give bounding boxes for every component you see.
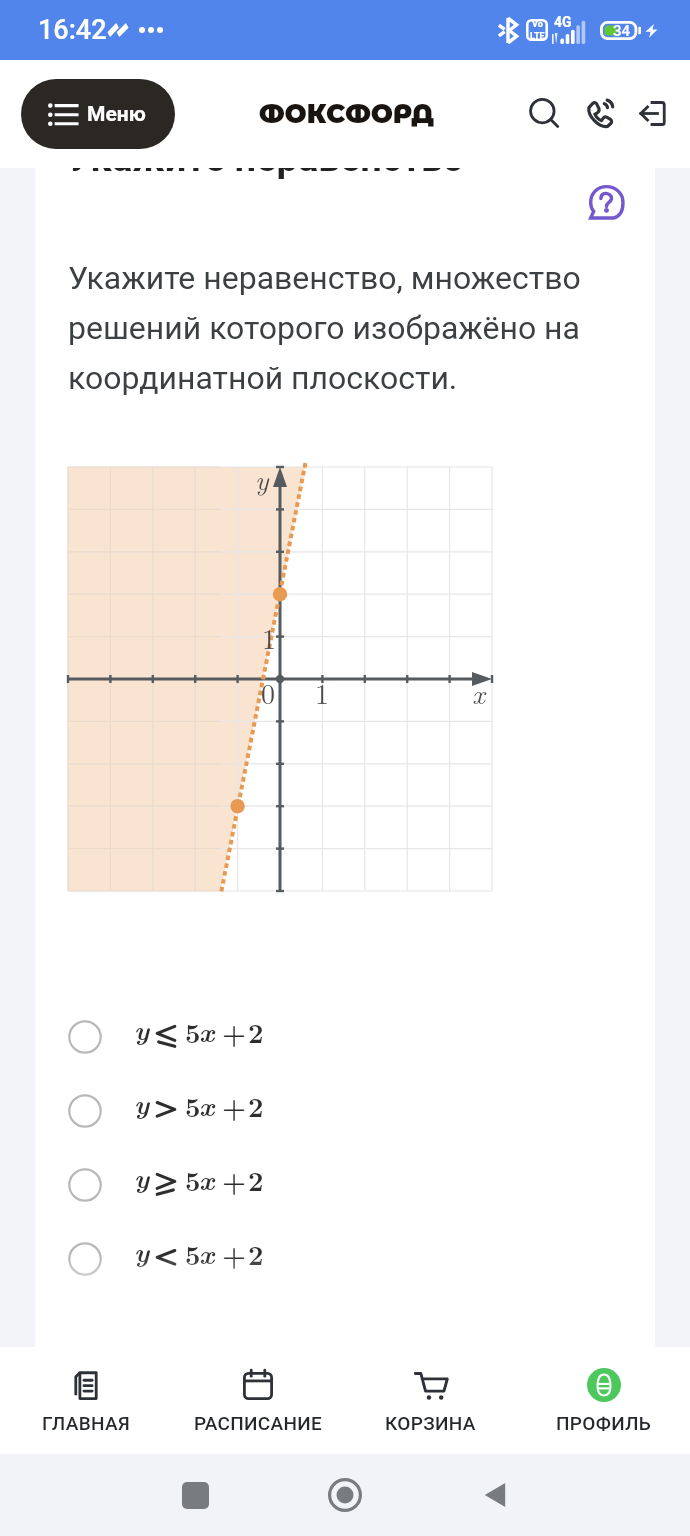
- staticText: 5: [185, 1086, 201, 1125]
- staticText: 2: [248, 1160, 264, 1199]
- staticText: x: [199, 1011, 215, 1050]
- staticText: y: [134, 1083, 150, 1122]
- staticText: 2: [248, 1234, 264, 1273]
- button[interactable]: Home: [315, 1465, 375, 1525]
- staticText: 34: [613, 22, 631, 40]
- button[interactable]: Меню: [21, 79, 175, 149]
- button[interactable]: Help: [583, 179, 629, 225]
- staticText: y: [134, 1009, 150, 1048]
- button[interactable]: КОРЗИНА: [344, 1347, 517, 1454]
- staticText: 1: [315, 672, 330, 712]
- staticText: Укажите неравенство, множество решений к…: [68, 259, 581, 396]
- staticText: 1: [262, 617, 277, 657]
- staticText: x: [199, 1085, 215, 1124]
- staticText: 4G: [554, 14, 572, 30]
- staticText: 5: [185, 1012, 201, 1051]
- staticText: LTE: [530, 31, 545, 41]
- button[interactable]: Recents: [165, 1465, 225, 1525]
- staticText: x: [472, 672, 485, 712]
- staticText: +: [222, 1234, 247, 1273]
- button[interactable]: y: [35, 1222, 655, 1296]
- staticText: x: [199, 1159, 215, 1198]
- button[interactable]: Back: [465, 1465, 525, 1525]
- staticText: +: [222, 1012, 247, 1051]
- staticText: 5: [185, 1234, 201, 1273]
- staticText: 2: [248, 1086, 264, 1125]
- button[interactable]: y: [35, 1000, 655, 1074]
- staticText: +: [222, 1160, 247, 1199]
- staticText: x: [199, 1233, 215, 1272]
- staticText: ПРОФИЛЬ: [556, 1412, 652, 1434]
- staticText: +: [222, 1086, 247, 1125]
- staticText: РАСПИСАНИЕ: [194, 1412, 323, 1434]
- staticText: Меню: [87, 102, 146, 127]
- staticText: 16:42: [38, 14, 107, 46]
- button[interactable]: ГЛАВНАЯ: [0, 1347, 172, 1454]
- button[interactable]: y: [35, 1148, 655, 1222]
- button[interactable]: Search: [518, 87, 570, 139]
- staticText: ГЛАВНАЯ: [42, 1412, 131, 1434]
- staticText: 5: [185, 1160, 201, 1199]
- staticText: ФОКСФОРД: [259, 98, 435, 130]
- button[interactable]: ПРОФИЛЬ: [517, 1347, 690, 1454]
- staticText: y: [134, 1157, 150, 1196]
- staticText: 2: [248, 1012, 264, 1051]
- staticText: 0: [261, 672, 276, 712]
- staticText: y: [134, 1231, 150, 1270]
- staticText: КОРЗИНА: [385, 1412, 476, 1434]
- button[interactable]: y: [35, 1074, 655, 1148]
- staticText: Vo: [532, 19, 543, 30]
- button[interactable]: РАСПИСАНИЕ: [172, 1347, 344, 1454]
- button[interactable]: Call: [572, 86, 625, 139]
- staticText: Укажите неравенство: [68, 136, 465, 181]
- button[interactable]: Log out: [627, 88, 678, 139]
- staticText: y: [255, 458, 269, 498]
